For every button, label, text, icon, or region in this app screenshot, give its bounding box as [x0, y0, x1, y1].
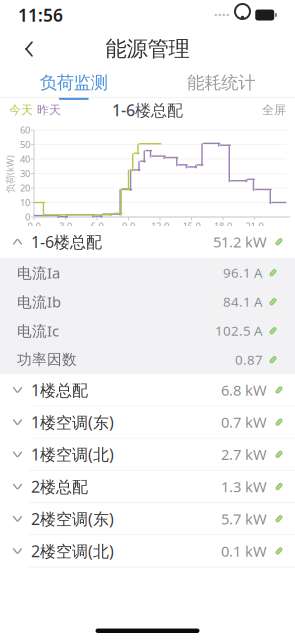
staticText: 20 — [20, 182, 30, 194]
staticText: 21.0 — [245, 220, 263, 232]
staticText: 1楼空调(东) — [31, 411, 114, 433]
staticText: 1-6楼总配 — [112, 99, 183, 121]
staticText: 1-6楼总配 — [31, 231, 102, 252]
button[interactable]: 今天 — [9, 103, 33, 117]
button[interactable]: 1楼总配 — [0, 374, 295, 406]
staticText: 能源管理 — [105, 36, 189, 62]
staticText: 0.0 — [27, 220, 40, 232]
staticText: 2楼空调(北) — [31, 540, 114, 561]
staticText: 0 — [25, 211, 30, 223]
staticText: 96.1 A — [223, 264, 263, 281]
staticText: 电流Ia — [17, 263, 60, 282]
button[interactable]: 能耗统计 — [147, 66, 295, 100]
button[interactable]: 返回 — [8, 30, 50, 68]
staticText: 50 — [20, 138, 30, 151]
staticText: 12.0 — [151, 220, 169, 232]
staticText: 5.7 kW — [221, 509, 267, 528]
staticText: 2楼空调(东) — [31, 508, 114, 529]
staticText: 40 — [20, 153, 30, 165]
staticText: 2.7 kW — [221, 445, 267, 464]
staticText: 电流Ib — [17, 292, 61, 311]
button[interactable]: 2楼空调(东) — [0, 503, 295, 535]
button[interactable]: 昨天 — [37, 103, 61, 117]
staticText: 能耗统计 — [187, 72, 255, 93]
button[interactable]: 2楼空调(北) — [0, 535, 295, 567]
staticText: 负荷(kW) — [0, 168, 29, 180]
staticText: 84.1 A — [223, 293, 263, 310]
staticText: 51.2 kW — [213, 232, 267, 251]
staticText: 1楼空调(北) — [31, 444, 114, 465]
button[interactable]: 全屏 — [262, 103, 286, 117]
staticText: 30 — [20, 167, 30, 180]
staticText: 今天 — [9, 103, 33, 117]
staticText: 1楼总配 — [31, 379, 88, 400]
staticText: 15.0 — [182, 220, 200, 232]
button[interactable]: 负荷监测 — [0, 66, 147, 100]
button[interactable]: 2楼总配 — [0, 471, 295, 503]
staticText: 昨天 — [37, 103, 61, 117]
staticText: 负荷监测 — [40, 72, 108, 93]
staticText: 102.5 A — [215, 322, 263, 339]
staticText: 0.87 — [235, 351, 263, 368]
staticText: 功率因数 — [17, 351, 77, 369]
button[interactable]: 1-6楼总配 — [0, 226, 295, 258]
staticText: 0.1 kW — [221, 541, 267, 561]
button[interactable]: 1楼空调(东) — [0, 406, 295, 439]
staticText: 全屏 — [262, 103, 286, 117]
staticText: 0.7 kW — [221, 412, 267, 432]
staticText: 60 — [20, 124, 30, 136]
staticText: 电流Ic — [17, 321, 59, 340]
staticText: 6.0 — [90, 220, 103, 232]
staticText: 3.0 — [59, 220, 72, 232]
staticText: 18.0 — [214, 220, 232, 232]
staticText: 10 — [20, 196, 30, 209]
staticText: 6.8 kW — [221, 380, 267, 400]
staticText: 2楼总配 — [31, 476, 88, 497]
staticText: 11:56 — [18, 3, 63, 26]
button[interactable]: 1楼空调(北) — [0, 439, 295, 471]
staticText: 1.3 kW — [221, 477, 267, 496]
staticText: 9.0 — [122, 220, 135, 232]
